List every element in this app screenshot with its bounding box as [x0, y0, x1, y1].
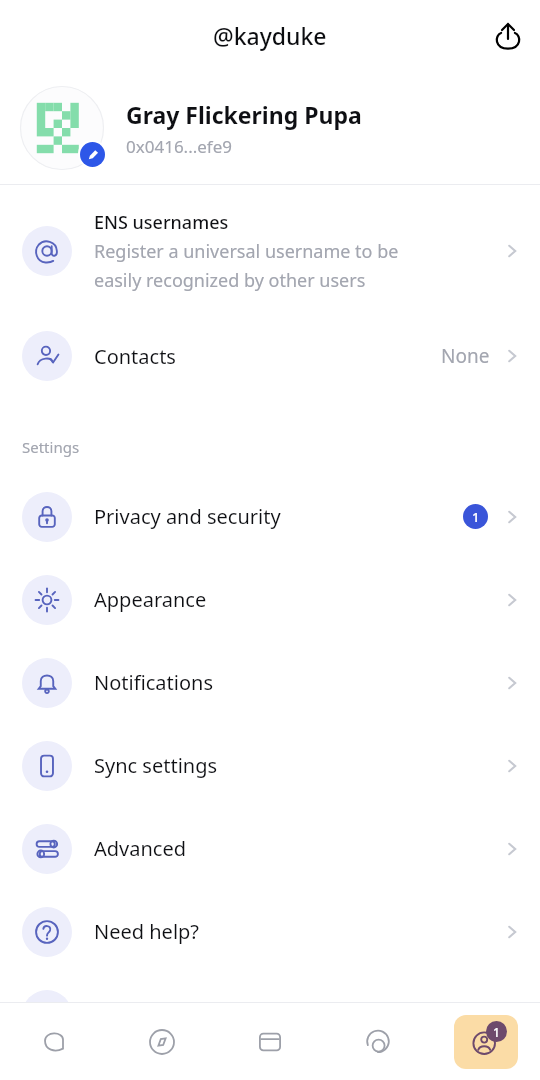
staticText: 1 [472, 508, 480, 526]
staticText: Contacts [94, 343, 441, 370]
staticText: Privacy and security [94, 503, 463, 530]
button[interactable]: Wallet [238, 1015, 302, 1069]
staticText: About [94, 1001, 502, 1028]
button[interactable]: Home [22, 1015, 86, 1069]
button[interactable]: Gray Flickering Pupa [0, 72, 540, 184]
button[interactable]: Need help? [0, 890, 540, 973]
button[interactable]: Share [484, 12, 532, 60]
button[interactable]: Advanced [0, 807, 540, 890]
staticText: Notifications [94, 669, 502, 696]
staticText: @kayduke [213, 20, 327, 51]
staticText: Sync settings [94, 752, 502, 779]
button[interactable]: Notifications [0, 641, 540, 724]
staticText: Need help? [94, 918, 502, 945]
staticText: Appearance [94, 586, 502, 613]
button[interactable]: Privacy and security [0, 475, 540, 558]
staticText: 0x0416...efe9 [126, 135, 233, 158]
button[interactable]: Feed [346, 1015, 410, 1069]
button[interactable]: Appearance [0, 558, 540, 641]
staticText: Advanced [94, 835, 502, 862]
staticText: Gray Flickering Pupa [126, 99, 362, 130]
staticText: ENS usernames [94, 210, 229, 235]
button[interactable]: Sync settings [0, 724, 540, 807]
staticText: None [441, 343, 490, 369]
button[interactable]: ENS usernames [0, 185, 540, 317]
button[interactable]: Profile [454, 1015, 518, 1069]
staticText: Register a universal username to be easi… [94, 239, 399, 292]
button[interactable]: Browser [130, 1015, 194, 1069]
button[interactable]: Contacts [0, 317, 540, 395]
staticText: 1 [493, 1024, 500, 1040]
button[interactable]: About [0, 973, 540, 1056]
staticText: Settings [22, 437, 80, 457]
